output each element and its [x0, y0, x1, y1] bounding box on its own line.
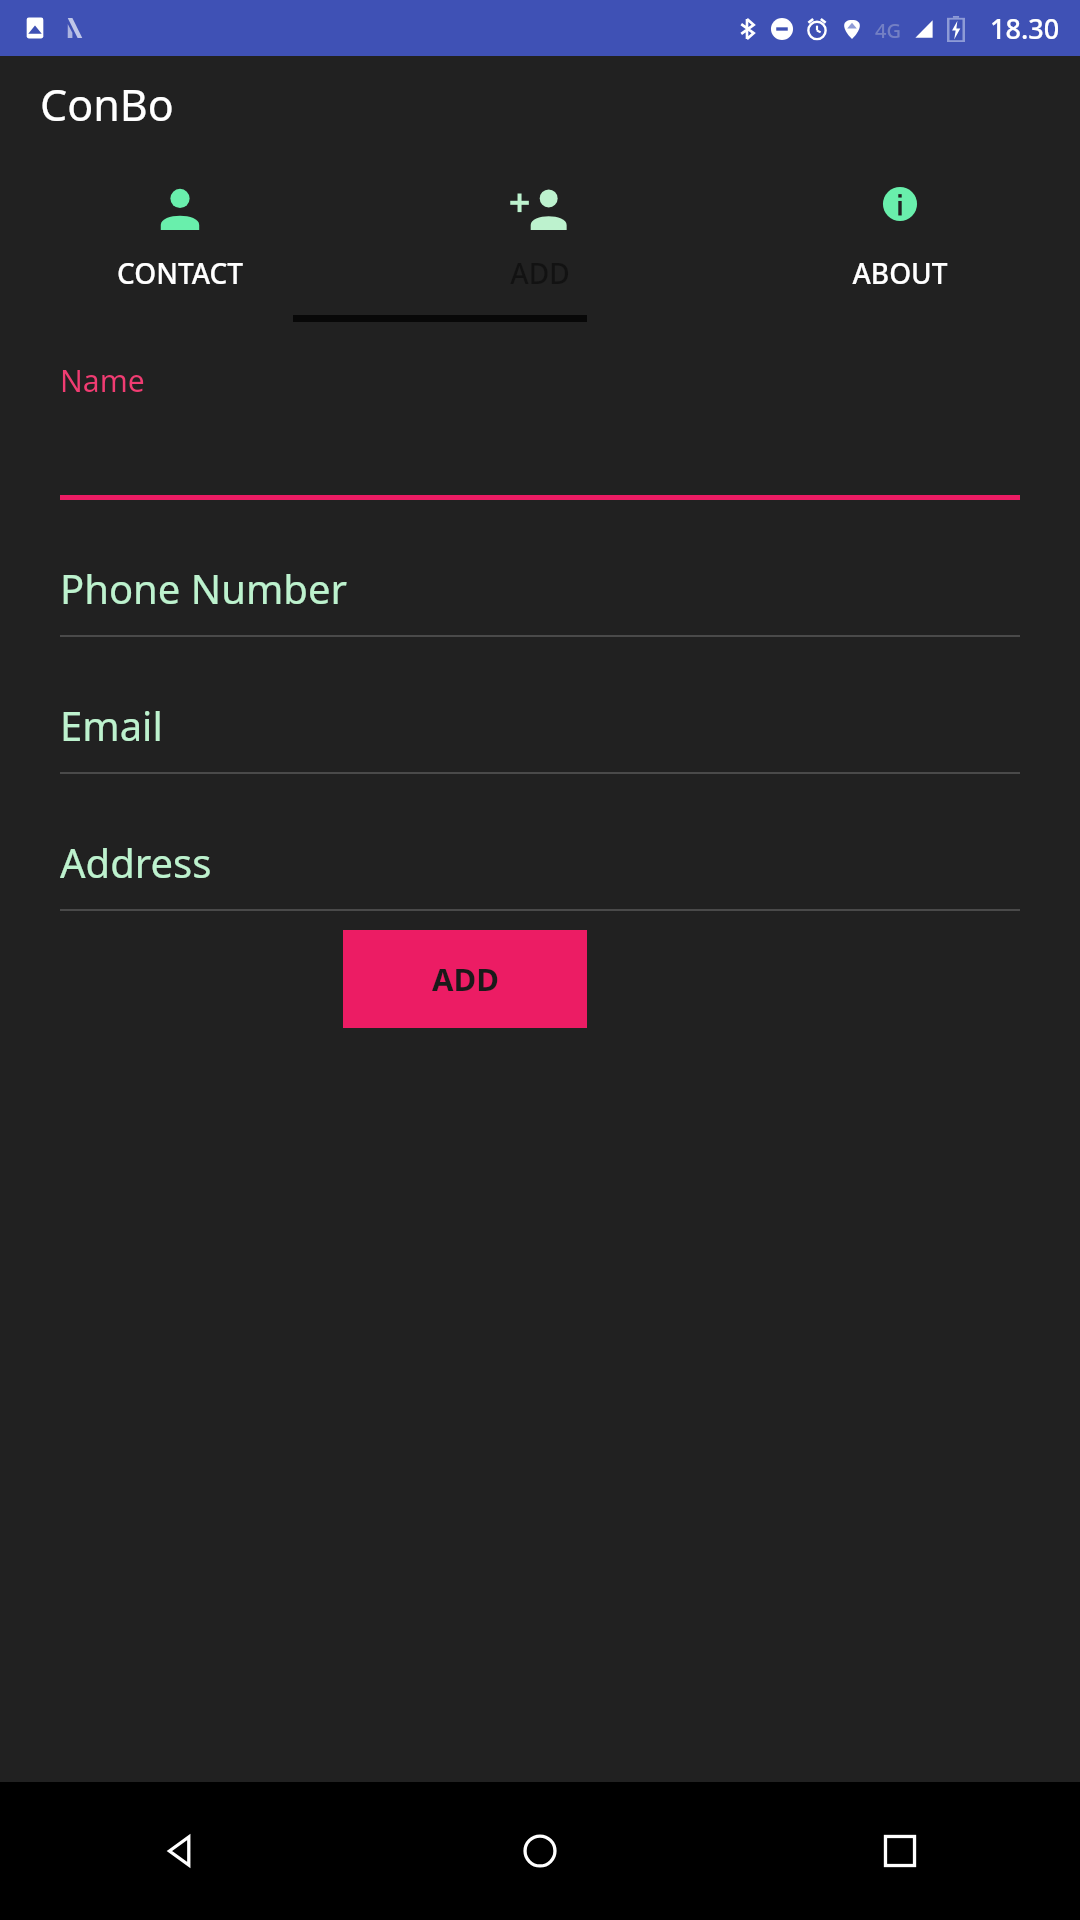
staticText: Email [60, 698, 163, 752]
staticText: ABOUT [852, 254, 948, 292]
button[interactable]: Phone Number [60, 559, 1020, 637]
staticText: 18.30 [990, 10, 1060, 47]
staticText: ADD [510, 254, 570, 292]
staticText: ADD [432, 958, 499, 1000]
button[interactable]: Add tab [360, 152, 720, 292]
button[interactable]: About tab [720, 152, 1080, 292]
staticText: Phone Number [60, 561, 347, 615]
button[interactable]: Home [360, 1782, 720, 1920]
staticText: ConBo [40, 75, 174, 134]
button[interactable]: ADD [343, 930, 587, 1028]
staticText: 4G [875, 17, 901, 41]
button[interactable]: Contact tab [0, 152, 360, 292]
staticText: Address [60, 835, 212, 889]
button[interactable]: Name [60, 360, 1020, 500]
button[interactable]: Address [60, 833, 1020, 911]
staticText: CONTACT [117, 254, 243, 292]
staticText: Name [60, 360, 145, 401]
button[interactable]: Recent apps [720, 1782, 1080, 1920]
button[interactable]: Back [0, 1782, 360, 1920]
button[interactable]: Email [60, 696, 1020, 774]
